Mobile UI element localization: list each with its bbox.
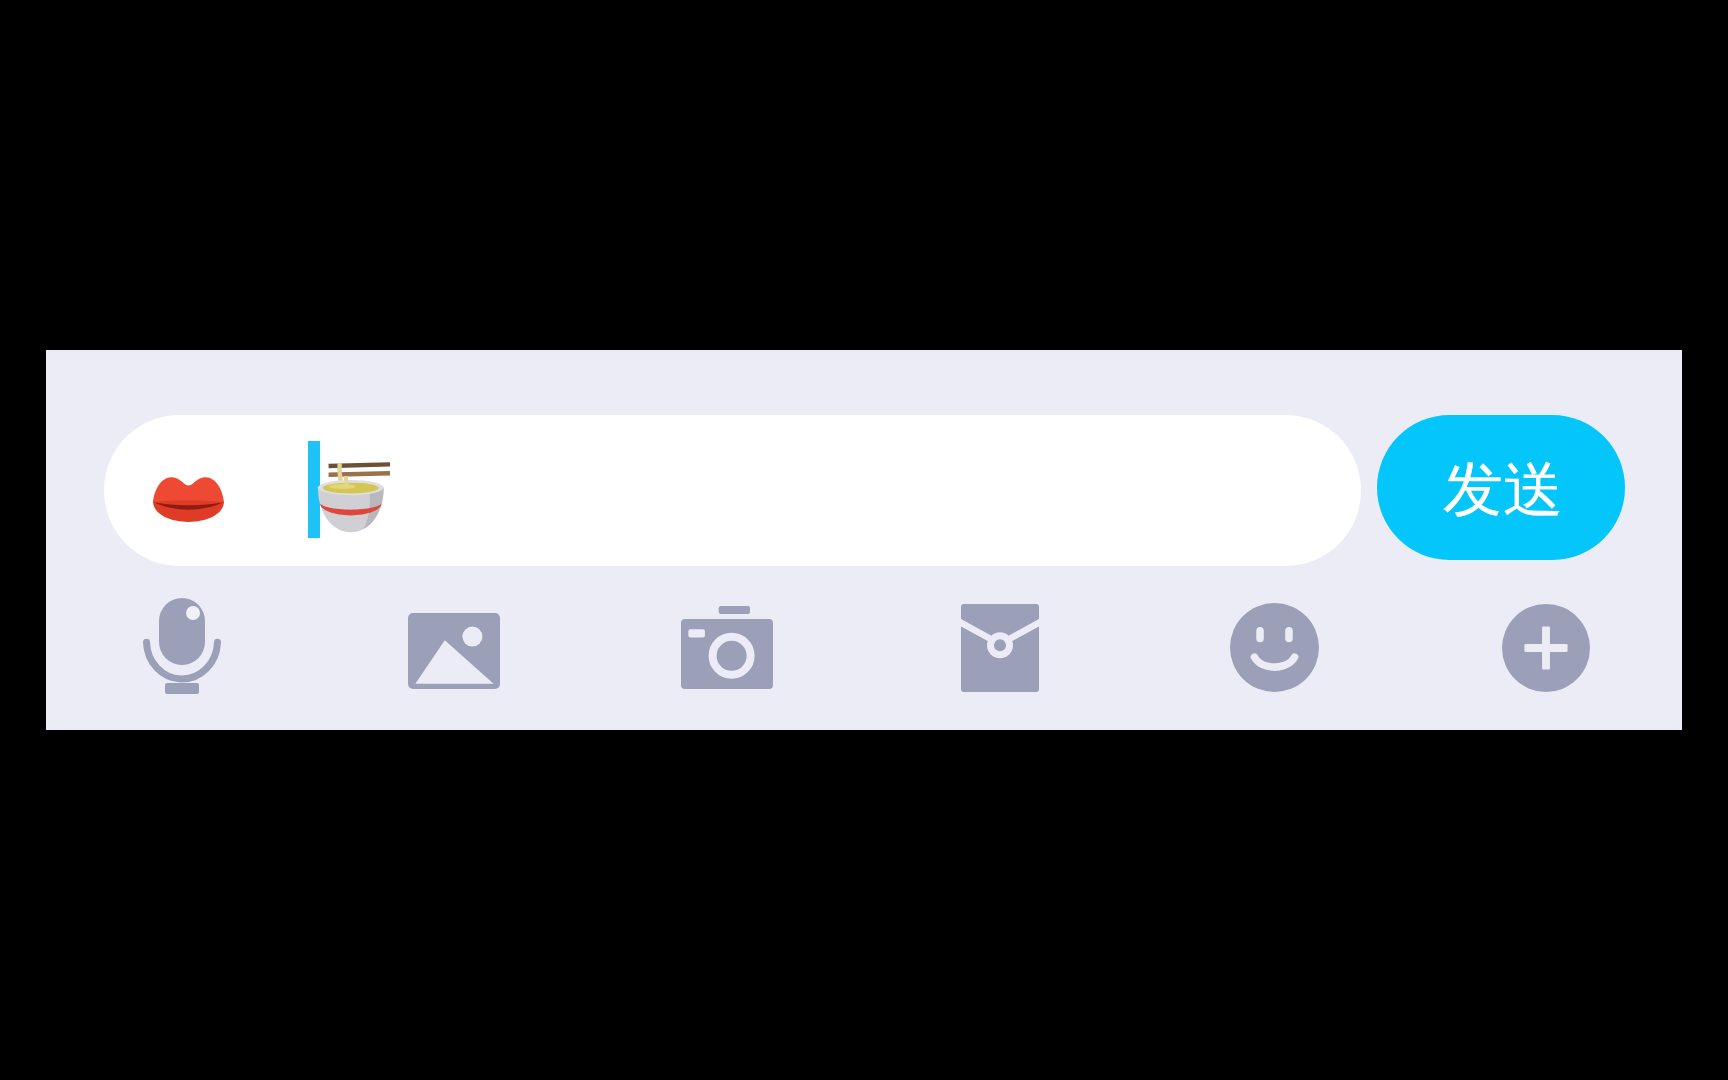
button[interactable]: Voice message xyxy=(46,565,318,730)
button[interactable] xyxy=(104,415,1361,566)
staticText: 发送 xyxy=(1443,452,1563,528)
button[interactable]: More xyxy=(1409,565,1682,730)
button[interactable]: 发送 xyxy=(1377,415,1625,560)
button[interactable]: Photo xyxy=(318,565,590,730)
button[interactable]: Emoji xyxy=(1136,565,1409,730)
button[interactable]: Red packet xyxy=(863,565,1136,730)
button[interactable]: Camera xyxy=(590,565,863,730)
